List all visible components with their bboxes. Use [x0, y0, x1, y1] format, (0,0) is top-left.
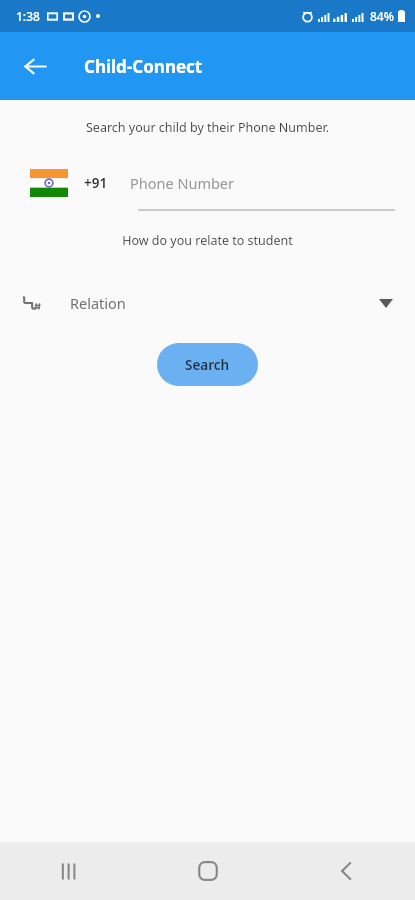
staticText: Child-Connect	[84, 55, 203, 78]
button[interactable]: Phone Number	[130, 173, 395, 193]
button[interactable]: Back	[13, 44, 57, 88]
button[interactable]: Search	[157, 343, 258, 386]
staticText: How do you relate to student	[0, 232, 415, 249]
staticText: Search your child by their Phone Number.	[0, 119, 415, 136]
button[interactable]: Home	[181, 844, 235, 898]
staticText: Search	[185, 356, 230, 374]
button[interactable]: Relation	[0, 281, 415, 325]
staticText: 84%	[370, 8, 394, 24]
button[interactable]: Back	[319, 844, 373, 898]
staticText: +91	[84, 174, 108, 192]
staticText: Relation	[70, 293, 126, 313]
staticText: Phone Number	[130, 173, 235, 193]
button[interactable]: Recent apps	[42, 844, 96, 898]
staticText: 1:38	[16, 8, 40, 24]
